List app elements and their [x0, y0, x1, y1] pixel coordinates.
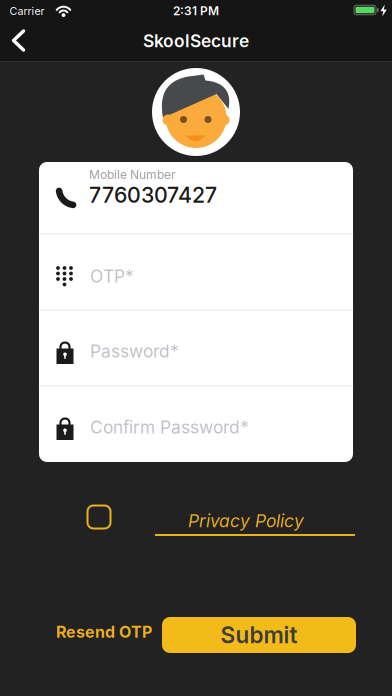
button[interactable]: Back [4, 25, 34, 55]
staticText: SkoolSecure [143, 31, 249, 51]
staticText: Resend OTP [56, 623, 152, 641]
button[interactable]: Submit [162, 617, 356, 653]
staticText: OTP* [90, 266, 134, 286]
staticText: 2:31 PM [173, 4, 219, 18]
button[interactable]: Password* [39, 310, 353, 386]
staticText: Password* [90, 341, 179, 361]
staticText: Mobile Number [89, 167, 176, 182]
staticText: Carrier [9, 5, 44, 17]
button[interactable]: Confirm Password* [39, 386, 353, 462]
button[interactable]: Accept privacy policy [87, 505, 110, 528]
staticText: Privacy Policy [188, 511, 304, 531]
button[interactable]: OTP [39, 234, 353, 310]
staticText: Submit [220, 622, 297, 648]
staticText: 7760307427 [89, 182, 217, 208]
button[interactable]: Privacy Policy [188, 511, 304, 531]
button[interactable]: Mobile Number [39, 162, 353, 234]
staticText: Confirm Password* [90, 417, 249, 437]
button[interactable]: Resend OTP [56, 623, 152, 641]
